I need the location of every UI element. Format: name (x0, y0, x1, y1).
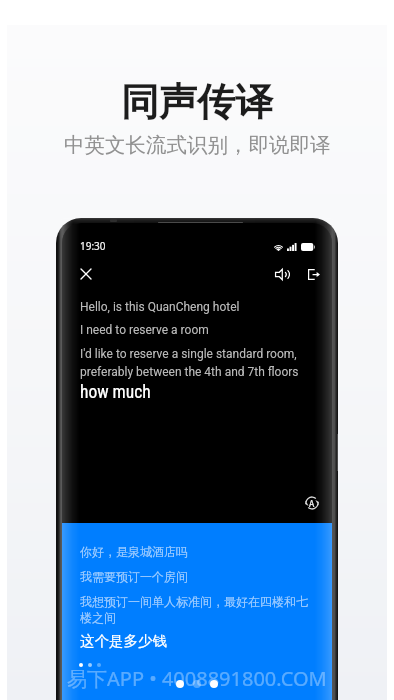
staticText: 你好，是泉城酒店吗 (80, 544, 188, 559)
button[interactable]: Volume (271, 263, 293, 285)
button[interactable]: Close (75, 263, 97, 285)
staticText: 我需要预订一个房间 (80, 569, 188, 584)
staticText: 同声传译 (121, 78, 273, 126)
staticText: I'd like to reserve a single standard ro… (80, 347, 318, 379)
staticText: I need to reserve a room (80, 323, 209, 337)
staticText: how much (80, 382, 151, 403)
staticText: 这个是多少钱 (80, 632, 167, 650)
staticText: 19:30 (80, 239, 106, 253)
button[interactable]: Exit (303, 263, 325, 285)
staticText: Hello, is this QuanCheng hotel (80, 300, 240, 314)
staticText: 我想预订一间单人标准间，最好在四楼和七楼之间 (80, 594, 318, 626)
button[interactable]: Auto translate (302, 493, 322, 513)
staticText: 易下APP • 4008891800.COM (67, 665, 327, 692)
staticText: 中英文长流式识别，即说即译 (64, 132, 331, 158)
staticText: A (309, 498, 315, 509)
